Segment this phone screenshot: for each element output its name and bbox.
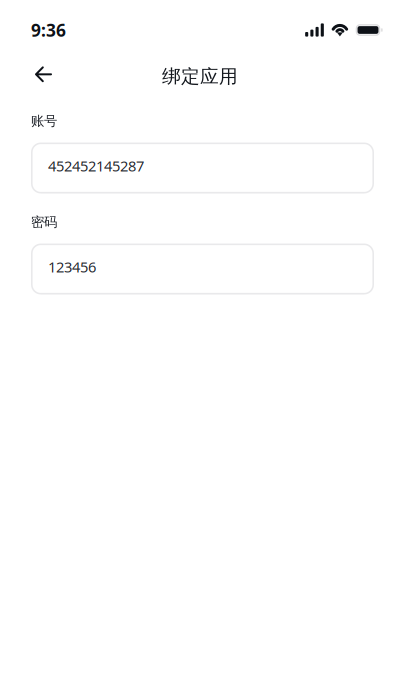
staticText: 9:36 <box>31 18 66 41</box>
staticText: 123456 <box>48 257 96 276</box>
staticText: 账号 <box>31 113 57 129</box>
staticText: 452452145287 <box>48 156 144 175</box>
staticText: 密码 <box>31 214 57 230</box>
staticText: 绑定应用 <box>162 65 238 88</box>
button[interactable]: 账号 <box>31 142 374 193</box>
button[interactable]: 返回 <box>21 57 65 95</box>
button[interactable]: 密码 <box>31 243 374 294</box>
